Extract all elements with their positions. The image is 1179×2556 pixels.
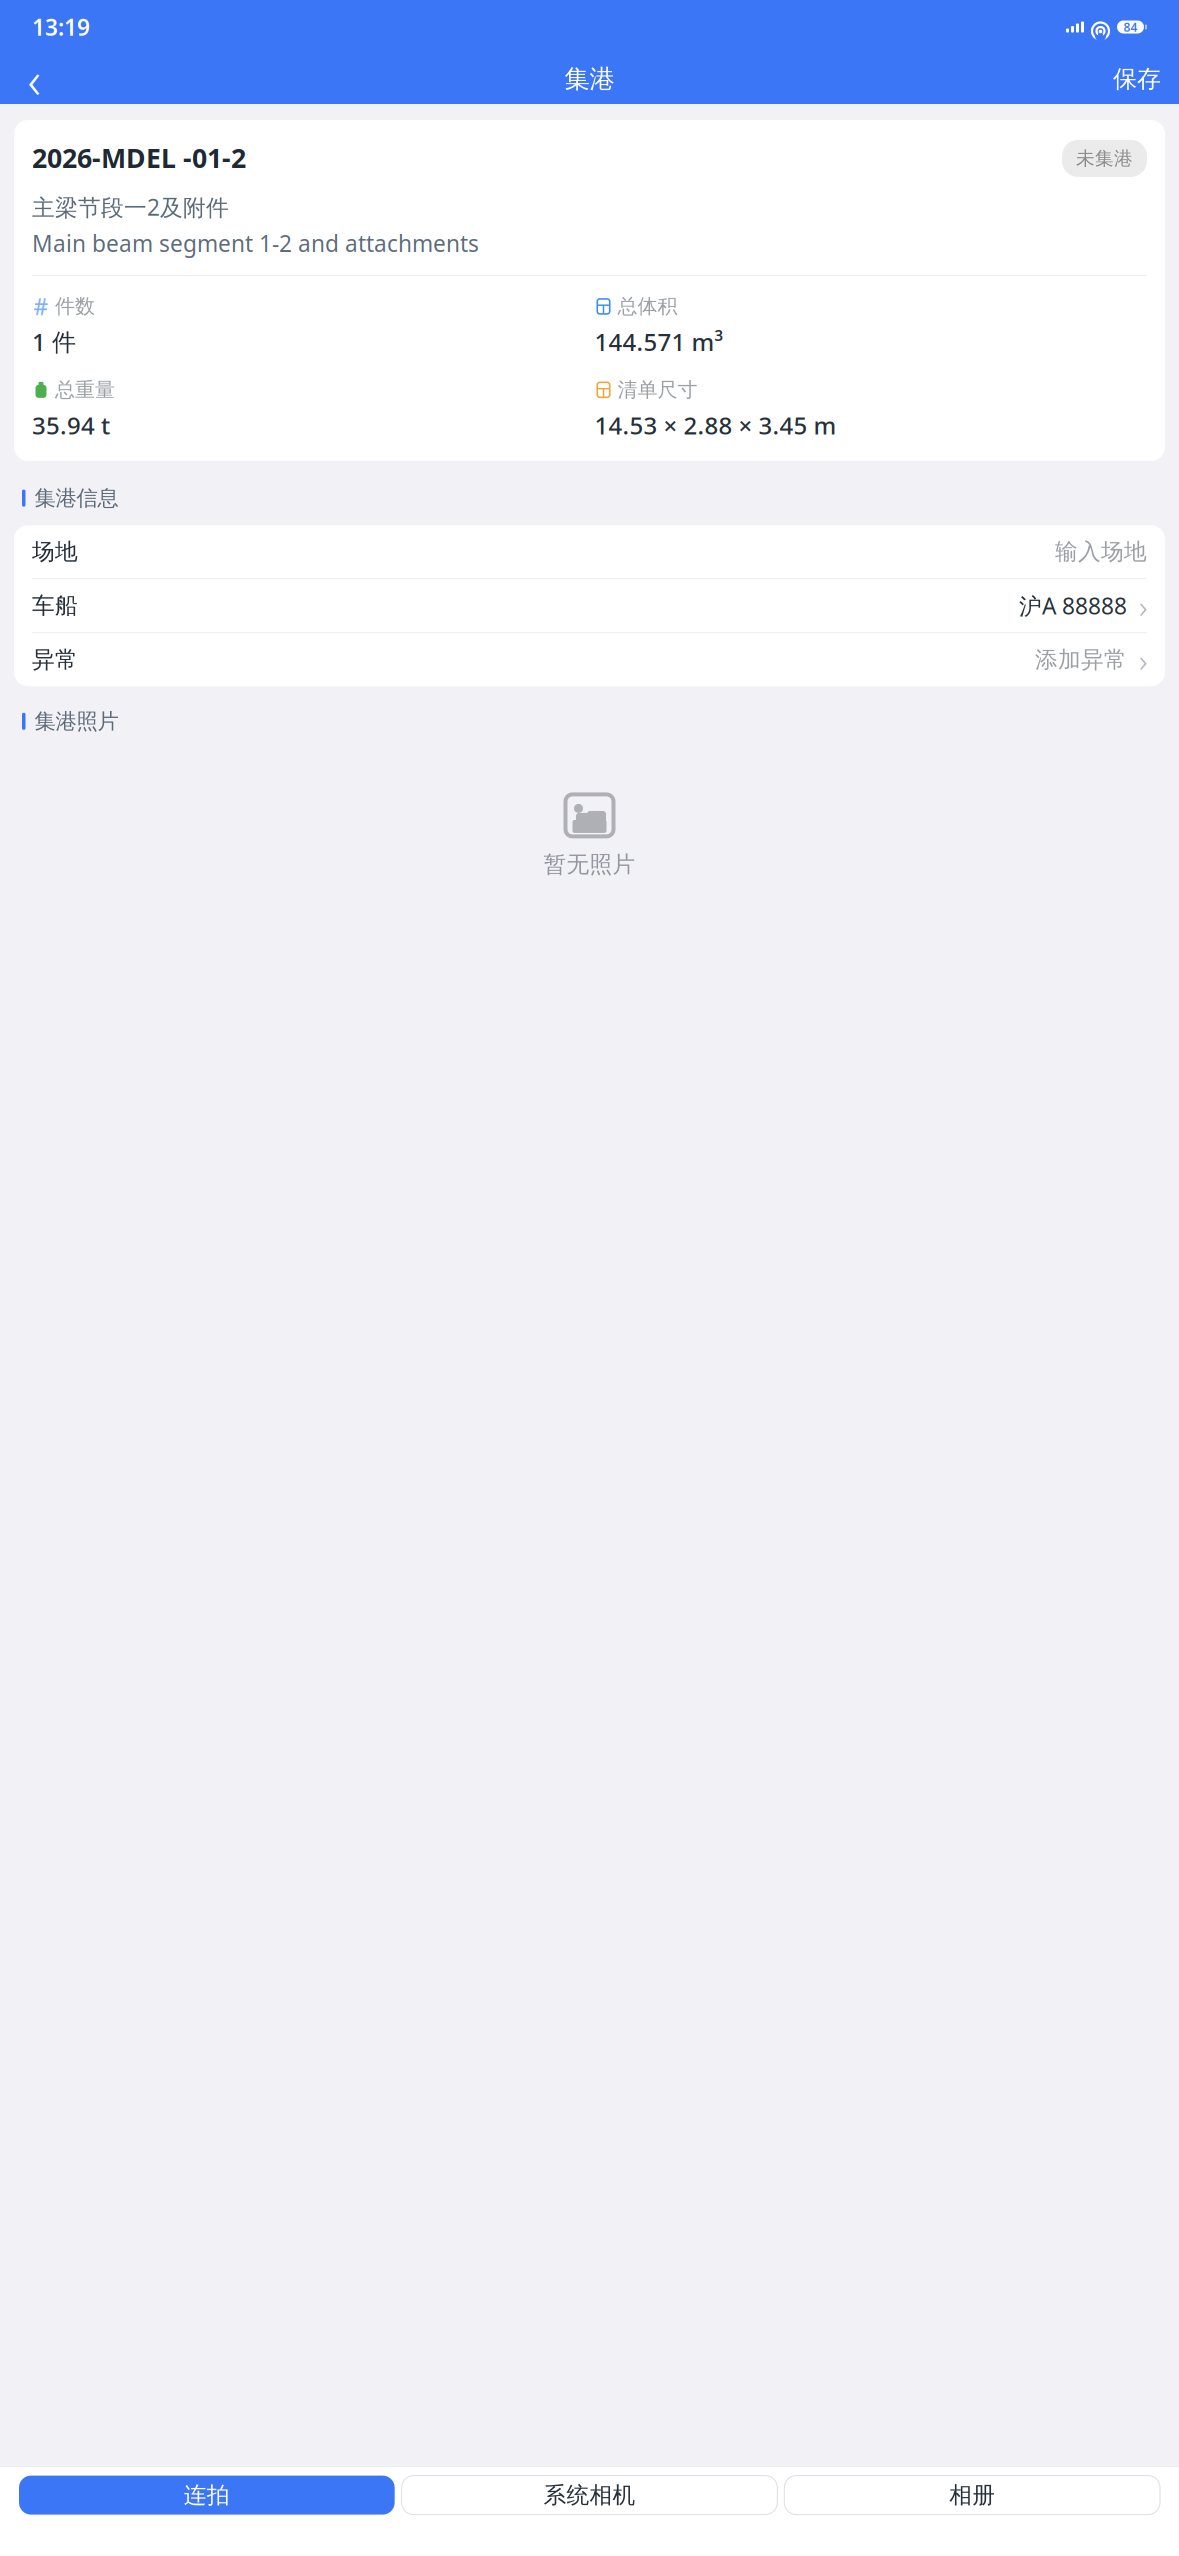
staticText: 场地	[32, 538, 78, 566]
staticText: 件数	[55, 294, 95, 319]
button[interactable]: 连拍	[19, 2476, 395, 2515]
staticText: 添加异常	[1035, 646, 1127, 674]
staticText: 总重量	[55, 378, 115, 402]
button[interactable]: 系统相机	[402, 2476, 777, 2515]
button[interactable]: 保存	[1107, 57, 1167, 101]
staticText: 保存	[1113, 64, 1161, 94]
staticText: 35.94 t	[32, 409, 110, 441]
staticText: 系统相机	[543, 2481, 635, 2509]
staticText: 相册	[949, 2481, 995, 2509]
staticText: #	[33, 291, 48, 321]
staticText: 1 件	[32, 326, 76, 358]
button[interactable]: 返回	[12, 57, 56, 101]
button[interactable]: 异常	[14, 633, 1165, 686]
staticText: 集港	[564, 63, 614, 94]
staticText: 集港照片	[34, 708, 118, 734]
staticText: 14.53 × 2.88 × 3.45 m	[594, 409, 836, 441]
staticText: 清单尺寸	[617, 378, 697, 402]
staticText: 总体积	[617, 294, 677, 319]
staticText: ›	[1139, 638, 1147, 681]
button[interactable]: 相册	[784, 2476, 1160, 2515]
staticText: 连拍	[184, 2481, 230, 2509]
button[interactable]: 车船	[14, 579, 1165, 632]
staticText: 集港信息	[34, 485, 118, 511]
staticText: 144.571 m³	[594, 326, 723, 358]
staticText: ‹	[27, 45, 40, 113]
staticText: 暂无照片	[543, 850, 635, 878]
staticText: ›	[1139, 584, 1147, 627]
staticText: 异常	[32, 646, 78, 674]
staticText: 84	[1123, 19, 1137, 35]
staticText: 沪A 88888	[1019, 591, 1127, 621]
staticText: 未集港	[1076, 147, 1133, 170]
staticText: 2026-MDEL -01-2	[32, 140, 246, 175]
staticText: 输入场地	[1055, 538, 1147, 566]
staticText: Main beam segment 1-2 and attachments	[32, 228, 479, 258]
staticText: 13:19	[32, 12, 90, 42]
staticText: 车船	[32, 592, 78, 620]
button[interactable]: 场地	[14, 525, 1165, 578]
staticText: 主梁节段一2及附件	[32, 192, 229, 222]
